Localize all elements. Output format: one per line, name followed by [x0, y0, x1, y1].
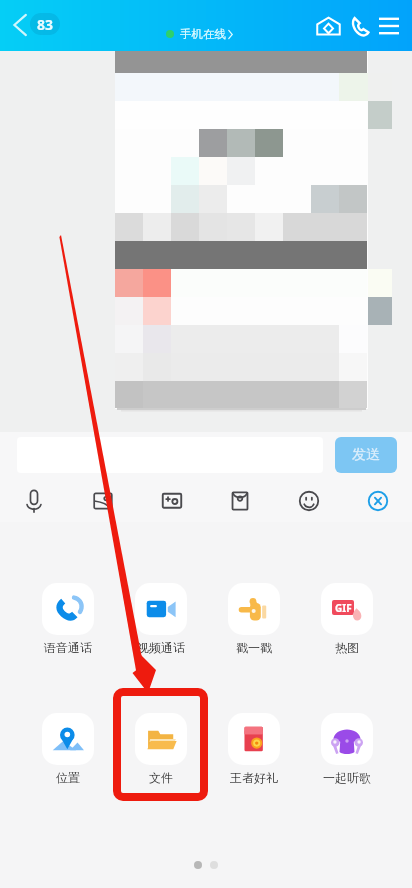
button[interactable]: Back — [8, 10, 64, 42]
staticText: 83 — [37, 15, 54, 34]
staticText: 位置 — [56, 770, 80, 785]
button[interactable]: Red packet — [219, 480, 261, 522]
button[interactable]: GIF — [311, 583, 383, 655]
staticText: 发送 — [352, 446, 380, 464]
staticText: 戳一戳 — [236, 640, 272, 655]
button[interactable]: 视频通话 — [125, 583, 197, 655]
staticText: 视频通话 — [137, 640, 185, 655]
staticText: 热图 — [335, 640, 359, 655]
staticText: GIF — [335, 601, 352, 615]
button[interactable]: 手机在线 — [166, 24, 233, 44]
staticText: 一起听歌 — [323, 770, 371, 785]
staticText: 语音通话 — [44, 640, 92, 655]
button[interactable]: Close panel — [357, 480, 399, 522]
button[interactable]: 戳一戳 — [218, 583, 290, 655]
button[interactable]: 位置 — [32, 713, 104, 785]
staticText: 王者好礼 — [230, 770, 278, 785]
staticText: 手机在线 — [180, 27, 226, 41]
button[interactable]: Photo — [82, 480, 124, 522]
button[interactable] — [17, 437, 323, 473]
button[interactable]: 王者好礼 — [218, 713, 290, 785]
staticText: 文件 — [149, 770, 173, 785]
button[interactable]: Menu — [372, 9, 406, 43]
other: Annotation — [0, 0, 412, 888]
button[interactable]: 语音通话 — [32, 583, 104, 655]
button[interactable]: Voice message — [13, 480, 55, 522]
button[interactable]: Call — [343, 9, 377, 43]
button[interactable]: Camera — [151, 480, 193, 522]
button[interactable]: Emoji — [288, 480, 330, 522]
button[interactable]: 文件 — [125, 713, 197, 785]
button[interactable]: 发送 — [335, 437, 397, 473]
button[interactable]: 一起听歌 — [311, 713, 383, 785]
button[interactable]: Home — [311, 9, 345, 43]
